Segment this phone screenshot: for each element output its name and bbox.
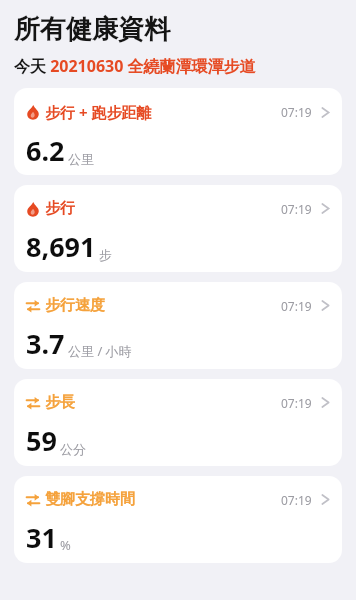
staticText: % bbox=[60, 536, 71, 554]
staticText: 公分 bbox=[60, 441, 86, 457]
staticText: 雙腳支撐時間 bbox=[45, 490, 135, 509]
staticText: 所有健康資料 bbox=[14, 13, 170, 46]
staticText: 07:19 bbox=[281, 395, 312, 411]
staticText: 07:19 bbox=[281, 492, 312, 508]
staticText: 今天 20210630 全繞蘭潭環潭步道 bbox=[14, 55, 256, 77]
other: Open details bbox=[321, 201, 330, 216]
staticText: 步行 + 跑步距離 bbox=[45, 102, 152, 122]
button[interactable]: 步行速度 bbox=[14, 282, 342, 369]
button[interactable]: 步長 bbox=[14, 379, 342, 466]
staticText: 59 bbox=[26, 422, 57, 459]
other: Open details bbox=[321, 492, 330, 507]
staticText: 步行 bbox=[45, 199, 75, 218]
staticText: 07:19 bbox=[281, 201, 312, 217]
staticText: 步長 bbox=[45, 393, 75, 412]
staticText: 07:19 bbox=[281, 298, 312, 314]
button[interactable]: 步行 bbox=[14, 185, 342, 272]
other: Open details bbox=[321, 298, 330, 313]
other: Open details bbox=[321, 395, 330, 410]
staticText: 3.7 bbox=[26, 325, 65, 362]
button[interactable]: 雙腳支撐時間 bbox=[14, 476, 342, 563]
staticText: 步行速度 bbox=[45, 296, 105, 315]
staticText: 31 bbox=[26, 519, 57, 556]
staticText: 8,691 bbox=[26, 228, 96, 265]
other: Open details bbox=[321, 105, 330, 120]
staticText: 公里 bbox=[68, 151, 94, 167]
staticText: 步 bbox=[99, 247, 112, 263]
staticText: 公里 / 小時 bbox=[68, 342, 132, 360]
staticText: 6.2 bbox=[26, 132, 65, 169]
staticText: 07:19 bbox=[281, 104, 312, 120]
button[interactable]: 步行 + 跑步距離 bbox=[14, 88, 342, 175]
